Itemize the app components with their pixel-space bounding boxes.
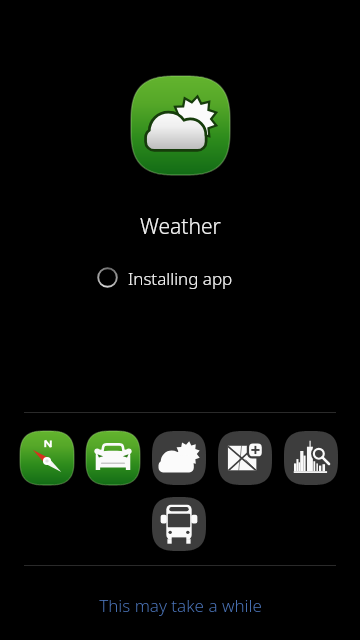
button[interactable]: This may take a while: [0, 591, 360, 619]
button[interactable]: Weather app icon: [131, 76, 230, 175]
staticText: This may take a while: [99, 594, 262, 617]
staticText: Weather: [140, 212, 221, 241]
button[interactable]: Public transport: [152, 497, 206, 551]
button[interactable]: Installing app: [0, 266, 360, 290]
button[interactable]: City guide: [284, 431, 338, 485]
button[interactable]: Drive: [86, 431, 140, 485]
button[interactable]: Compass: [20, 431, 74, 485]
button[interactable]: Weather: [152, 431, 206, 485]
button[interactable]: Maps: [218, 431, 272, 485]
staticText: Installing app: [128, 267, 233, 290]
